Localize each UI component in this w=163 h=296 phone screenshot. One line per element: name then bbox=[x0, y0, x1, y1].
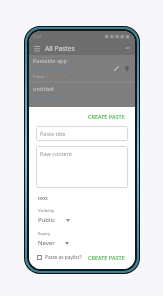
staticText: opSGreye • text bbox=[33, 94, 66, 100]
button[interactable]: CREATE PASTE bbox=[85, 252, 128, 263]
staticText: Visibility bbox=[38, 208, 55, 214]
staticText: Expiry bbox=[38, 231, 51, 237]
staticText: Public • bbox=[33, 74, 49, 80]
staticText: text bbox=[38, 194, 48, 201]
staticText: • bbox=[64, 74, 68, 80]
staticText: duhhuang • text bbox=[33, 66, 68, 72]
button[interactable]: Visibility bbox=[36, 208, 128, 224]
button[interactable]: Open navigation menu bbox=[33, 44, 41, 52]
staticText: Raw content bbox=[40, 150, 73, 157]
button[interactable]: Expiry bbox=[36, 231, 128, 247]
button[interactable]: CREATE PASTE bbox=[85, 111, 128, 122]
button[interactable]: Paste as paylist? bbox=[36, 252, 83, 263]
staticText: Never bbox=[38, 239, 55, 247]
button[interactable]: Edit paste bbox=[112, 64, 121, 73]
staticText: Public bbox=[38, 216, 56, 224]
button[interactable]: Raw content bbox=[36, 146, 128, 188]
button[interactable]: Pastable app bbox=[29, 55, 135, 82]
button[interactable]: More options bbox=[123, 44, 131, 52]
staticText: All Pastes bbox=[45, 44, 75, 53]
button[interactable]: Paste title bbox=[36, 126, 128, 141]
staticText: Paste title bbox=[40, 130, 66, 137]
staticText: CREATE PASTE bbox=[88, 113, 125, 120]
staticText: untitled bbox=[33, 85, 54, 92]
button[interactable]: Open navigation menu bbox=[29, 41, 135, 55]
button[interactable]: untitled bbox=[29, 83, 135, 102]
staticText: CREATE PASTE bbox=[88, 254, 125, 261]
button[interactable]: Delete paste bbox=[122, 64, 131, 73]
staticText: Paste as paylist? bbox=[45, 254, 82, 261]
staticText: id 6072 bbox=[49, 74, 64, 80]
staticText: s 68 bbox=[68, 74, 76, 80]
staticText: Pastable app bbox=[33, 57, 67, 64]
staticText: 2:44 bbox=[33, 34, 41, 39]
